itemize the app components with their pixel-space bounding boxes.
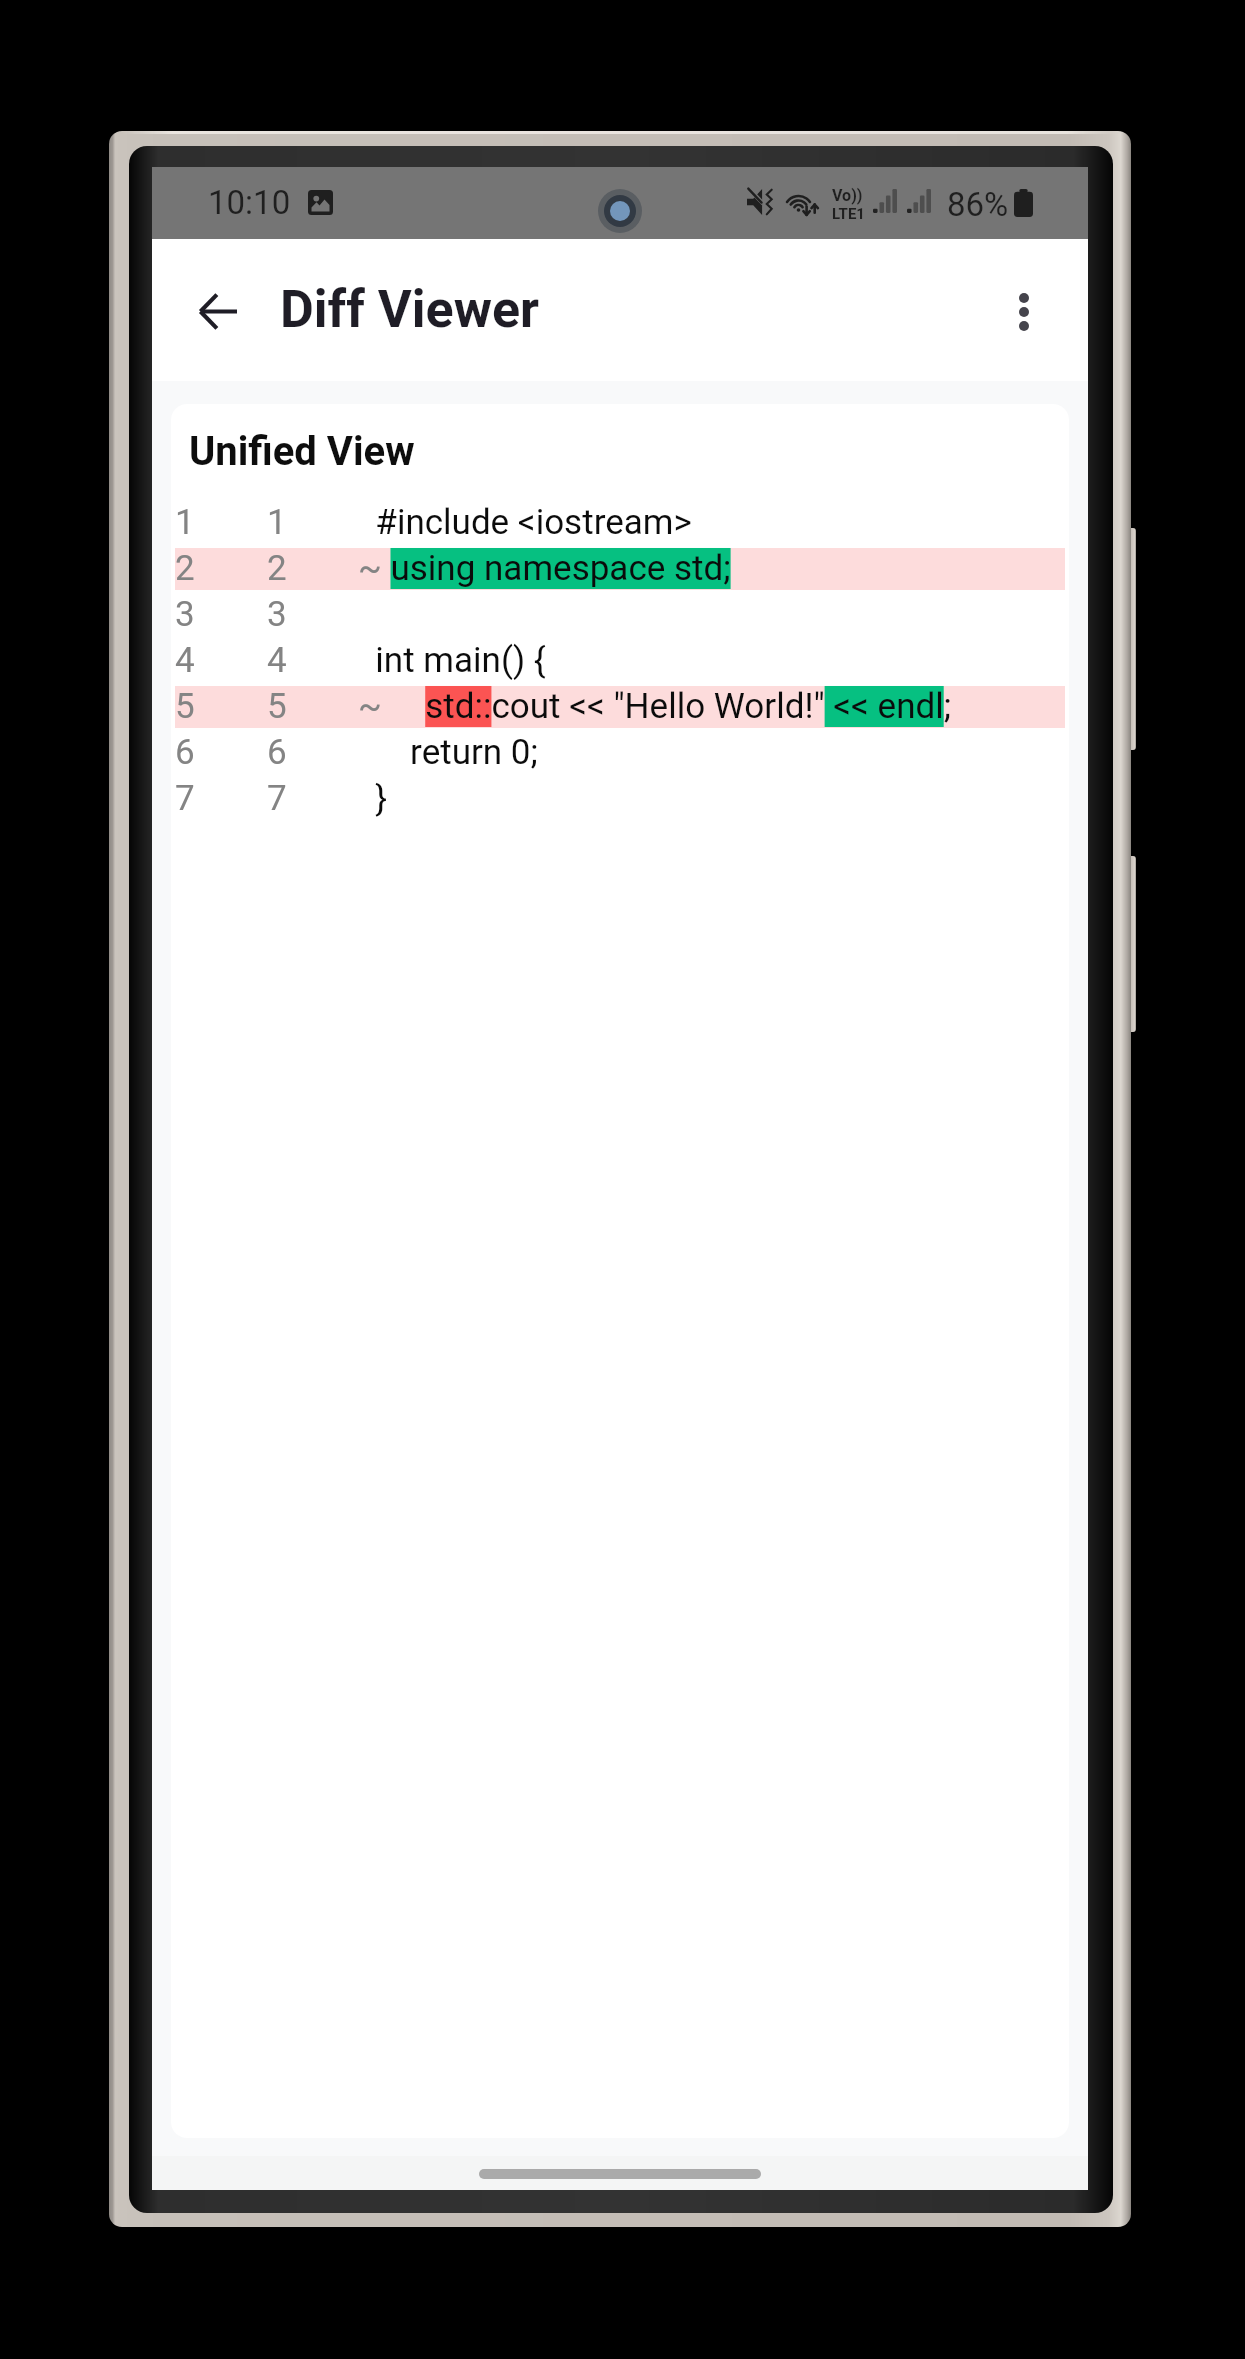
- staticText: Unified View: [189, 428, 415, 475]
- staticText: LTE1: [832, 205, 865, 223]
- button[interactable]: 1: [171, 500, 1069, 546]
- staticText: 5: [175, 686, 267, 727]
- button[interactable]: More options: [986, 274, 1062, 350]
- button[interactable]: Back: [180, 273, 256, 349]
- staticText: ~ using namespace std;: [358, 548, 731, 589]
- staticText: ~ std::cout << "Hello World!" << endl;: [358, 686, 952, 727]
- button[interactable]: 4: [171, 638, 1069, 684]
- staticText: 4: [175, 640, 267, 681]
- staticText: 1: [267, 502, 358, 543]
- staticText: Vo)): [832, 186, 863, 205]
- staticText: 5: [267, 686, 358, 727]
- staticText: Diff Viewer: [280, 279, 540, 340]
- button[interactable]: 5: [171, 684, 1069, 730]
- button[interactable]: 7: [171, 776, 1069, 822]
- staticText: #include <iostream>: [358, 502, 692, 543]
- staticText: 4: [267, 640, 358, 681]
- staticText: 10:10: [208, 183, 291, 222]
- button[interactable]: 6: [171, 730, 1069, 776]
- staticText: 7: [175, 778, 267, 819]
- staticText: 7: [267, 778, 358, 819]
- staticText: int main() {: [358, 640, 546, 681]
- staticText: 86%: [947, 185, 1009, 224]
- staticText: 2: [175, 548, 267, 589]
- staticText: 6: [175, 732, 267, 773]
- staticText: return 0;: [358, 732, 538, 773]
- button[interactable]: 2: [171, 546, 1069, 592]
- staticText: 1: [175, 502, 267, 543]
- staticText: 2: [267, 548, 358, 589]
- staticText: }: [358, 778, 388, 819]
- button[interactable]: 3: [171, 592, 1069, 638]
- staticText: 3: [175, 594, 267, 635]
- staticText: 6: [267, 732, 358, 773]
- staticText: 3: [267, 594, 358, 635]
